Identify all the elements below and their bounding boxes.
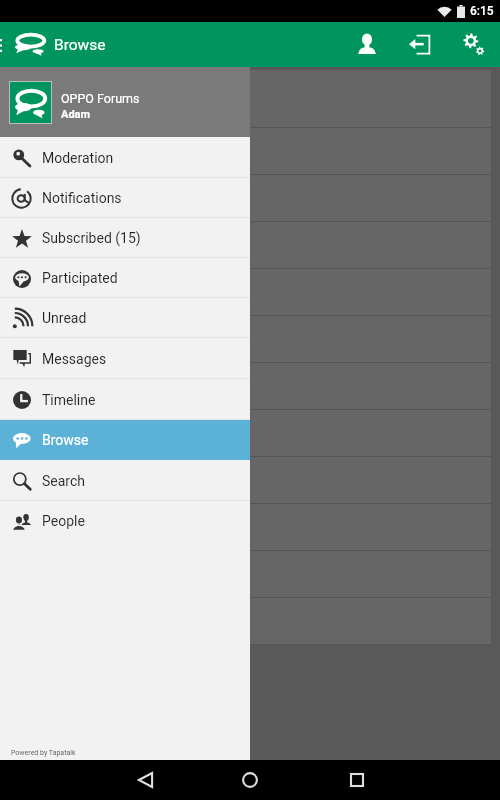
button[interactable]: Browse bbox=[0, 420, 250, 460]
button[interactable]: Search bbox=[0, 460, 250, 501]
staticText: Adam bbox=[61, 108, 91, 121]
staticText: Powered by Tapatalk bbox=[11, 749, 76, 757]
button[interactable]: Messages bbox=[0, 338, 250, 379]
button[interactable]: People bbox=[0, 501, 250, 541]
button[interactable]: Recent apps bbox=[339, 762, 375, 798]
staticText: 6:15 bbox=[470, 4, 494, 18]
staticText: Browse bbox=[42, 432, 89, 448]
button[interactable]: OPPO Forums bbox=[0, 67, 250, 137]
staticText: Browse bbox=[54, 36, 106, 54]
button[interactable]: Open navigation drawer bbox=[0, 25, 13, 65]
button[interactable]: Home bbox=[232, 762, 268, 798]
staticText: Unread bbox=[42, 310, 87, 326]
button[interactable]: Moderation bbox=[0, 137, 250, 178]
staticText: OPPO Forums bbox=[61, 91, 140, 106]
button[interactable]: Timeline bbox=[0, 379, 250, 420]
button[interactable]: Participated bbox=[0, 258, 250, 298]
staticText: Subscribed (15) bbox=[42, 230, 141, 246]
button[interactable]: Profile bbox=[345, 21, 389, 65]
staticText: Participated bbox=[42, 270, 118, 286]
button[interactable]: Unread bbox=[0, 298, 250, 338]
button[interactable]: Log out bbox=[397, 21, 441, 65]
staticText: Timeline bbox=[42, 392, 96, 408]
staticText: Notifications bbox=[42, 190, 122, 206]
button[interactable]: Back bbox=[127, 762, 163, 798]
button[interactable]: Settings bbox=[452, 22, 496, 66]
staticText: Moderation bbox=[42, 150, 114, 166]
button[interactable]: Subscribed (15) bbox=[0, 218, 250, 258]
staticText: People bbox=[42, 513, 85, 529]
staticText: Search bbox=[42, 473, 86, 489]
button[interactable]: Notifications bbox=[0, 178, 250, 218]
staticText: Messages bbox=[42, 351, 107, 367]
